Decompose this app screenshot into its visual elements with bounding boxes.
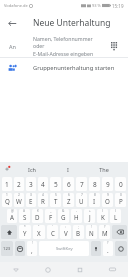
staticText: X bbox=[37, 229, 41, 237]
button[interactable]: An bbox=[0, 35, 128, 57]
button[interactable]: ? bbox=[99, 225, 110, 239]
staticText: ? bbox=[104, 225, 106, 229]
button[interactable]: 8 bbox=[89, 193, 100, 207]
staticText: L bbox=[114, 213, 118, 221]
button[interactable]: : bbox=[60, 225, 71, 239]
button[interactable]: _ bbox=[45, 209, 56, 223]
staticText: An bbox=[9, 43, 16, 50]
button[interactable]: & bbox=[58, 209, 69, 223]
staticText: 1 bbox=[6, 193, 8, 197]
button[interactable]: 6 bbox=[63, 177, 74, 191]
button[interactable]: Zurück bbox=[0, 11, 24, 35]
staticText: I bbox=[67, 166, 69, 173]
button[interactable]: 9 bbox=[102, 177, 113, 191]
button[interactable]: € bbox=[32, 209, 43, 223]
button[interactable]: 4 bbox=[38, 193, 48, 207]
button[interactable]: Senden bbox=[115, 241, 127, 256]
staticText: O bbox=[105, 197, 110, 205]
staticText: Z bbox=[67, 197, 71, 205]
staticText: 3 bbox=[29, 180, 33, 189]
button[interactable]: Symbole bbox=[1, 241, 13, 256]
button[interactable]: Löschen bbox=[112, 225, 127, 239]
staticText: 1 bbox=[5, 180, 9, 189]
button[interactable]: 8 bbox=[89, 177, 100, 191]
button[interactable]: 2 bbox=[14, 177, 24, 191]
button[interactable]: Emoji bbox=[15, 241, 25, 256]
staticText: E bbox=[29, 197, 33, 205]
button[interactable]: ) bbox=[110, 209, 121, 223]
staticText: . bbox=[107, 246, 109, 254]
staticText: ) bbox=[115, 209, 116, 213]
button[interactable]: - bbox=[71, 209, 82, 223]
button[interactable]: 3 bbox=[26, 193, 36, 207]
staticText: Vodafone.de bbox=[4, 3, 28, 8]
staticText: G bbox=[61, 213, 66, 221]
button[interactable]: 6 bbox=[63, 193, 74, 207]
button[interactable]: Zurück bbox=[0, 262, 32, 277]
button[interactable]: Mehr bbox=[0, 162, 14, 176]
staticText: 8 bbox=[94, 193, 96, 197]
staticText: I bbox=[93, 197, 96, 205]
button[interactable]: Gruppenunterhaltung starten bbox=[0, 58, 128, 78]
button[interactable]: * bbox=[19, 225, 31, 239]
staticText: 5 bbox=[55, 193, 57, 197]
staticText: 123 bbox=[3, 246, 11, 252]
staticText: Namen, Telefonnummer oder bbox=[33, 35, 104, 49]
button[interactable]: 1 bbox=[2, 177, 12, 191]
button[interactable]: 3 bbox=[26, 177, 36, 191]
staticText: D bbox=[35, 213, 40, 221]
button[interactable]: Umschalt bbox=[1, 225, 17, 239]
staticText: T bbox=[54, 197, 58, 205]
button[interactable]: 9 bbox=[102, 193, 113, 207]
button[interactable]: @ bbox=[7, 209, 17, 223]
staticText: 0 bbox=[119, 180, 123, 189]
button[interactable]: Startbildschirm bbox=[32, 262, 64, 277]
staticText: 6 bbox=[68, 193, 70, 197]
button[interactable]: 5 bbox=[50, 193, 61, 207]
staticText: A bbox=[10, 213, 14, 221]
button[interactable]: Wähltastatur bbox=[104, 35, 126, 57]
staticText: # bbox=[23, 209, 26, 213]
staticText: W bbox=[16, 197, 22, 205]
button[interactable]: Ich bbox=[14, 162, 50, 176]
staticText: R bbox=[41, 197, 45, 205]
staticText: ' bbox=[52, 225, 53, 229]
staticText: 4 bbox=[42, 193, 44, 197]
staticText: 7 bbox=[81, 193, 83, 197]
button[interactable]: ; bbox=[73, 225, 84, 239]
button[interactable]: Übersicht bbox=[64, 262, 96, 277]
button[interactable]: ! bbox=[86, 225, 97, 239]
staticText: 15:19 bbox=[112, 3, 124, 9]
button[interactable]: 0 bbox=[115, 193, 126, 207]
button[interactable]: + bbox=[84, 209, 95, 223]
button[interactable]: 2 bbox=[14, 193, 24, 207]
button[interactable]: # bbox=[19, 209, 30, 223]
button[interactable]: ' bbox=[47, 225, 58, 239]
button[interactable]: I bbox=[50, 162, 86, 176]
button[interactable]: 5 bbox=[50, 177, 61, 191]
staticText: € bbox=[37, 209, 39, 213]
button[interactable]: ! bbox=[27, 241, 37, 256]
button[interactable]: 7 bbox=[76, 177, 87, 191]
button[interactable]: Leertaste bbox=[39, 241, 89, 256]
button[interactable]: 0 bbox=[115, 177, 126, 191]
staticText: 5 bbox=[54, 180, 58, 189]
staticText: Y bbox=[23, 229, 27, 237]
button[interactable]: ? bbox=[103, 241, 113, 256]
staticText: + bbox=[89, 209, 91, 213]
staticText: 2 bbox=[18, 193, 20, 197]
staticText: 9 bbox=[107, 193, 109, 197]
button[interactable]: 4 bbox=[38, 177, 48, 191]
button[interactable]: The bbox=[86, 162, 122, 176]
button[interactable]: 1 bbox=[2, 193, 12, 207]
staticText: V bbox=[64, 229, 68, 237]
button[interactable]: " bbox=[33, 225, 45, 239]
staticText: ! bbox=[32, 241, 33, 245]
button[interactable]: Mikrofon bbox=[91, 241, 101, 256]
staticText: SwiftKey bbox=[56, 246, 73, 252]
staticText: 93 % bbox=[92, 3, 101, 8]
button[interactable]: ( bbox=[97, 209, 108, 223]
staticText: Q bbox=[5, 197, 10, 205]
button[interactable]: Tastatur ausblenden bbox=[96, 262, 128, 277]
button[interactable]: 7 bbox=[76, 193, 87, 207]
